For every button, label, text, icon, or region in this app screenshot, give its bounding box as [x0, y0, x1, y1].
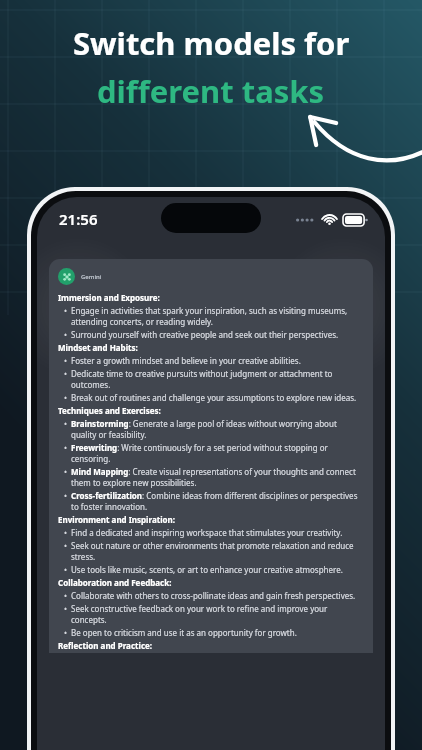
staticText: Cross-fertilization: Combine ideas from … [71, 490, 364, 512]
staticText: different tasks [97, 70, 325, 112]
staticText: Mind Mapping: Create visual representati… [71, 466, 364, 488]
staticText: • [64, 466, 68, 477]
staticText: Switch models for [73, 22, 350, 64]
staticText: • [64, 627, 68, 638]
staticText: • [64, 368, 68, 379]
staticText: Seek out nature or other environments th… [71, 540, 364, 562]
button[interactable]: Gemini [49, 259, 373, 653]
staticText: Dedicate time to creative pursuits witho… [71, 368, 364, 390]
staticText: • [64, 490, 68, 501]
staticText: Mindset and Habits: [58, 342, 138, 353]
staticText: Gemini [81, 273, 102, 281]
staticText: Techniques and Exercises: [58, 405, 161, 416]
staticText: Brainstorming: Generate a large pool of … [71, 418, 364, 440]
staticText: 21:56 [59, 209, 98, 229]
staticText: • [64, 603, 68, 614]
staticText: • [64, 329, 68, 340]
staticText: Surround yourself with creative people a… [71, 329, 339, 340]
staticText: • [64, 392, 68, 403]
staticText: • [64, 564, 68, 575]
staticText: Environment and Inspiration: [58, 514, 176, 525]
staticText: • [64, 540, 68, 551]
staticText: • [64, 355, 68, 366]
staticText: Collaborate with others to cross-pollina… [71, 590, 356, 601]
staticText: • [64, 305, 68, 316]
staticText: • [64, 442, 68, 453]
staticText: • [64, 418, 68, 429]
staticText: Collaboration and Feedback: [58, 577, 172, 588]
staticText: • [64, 590, 68, 601]
staticText: Use tools like music, scents, or art to … [71, 564, 343, 575]
staticText: Find a dedicated and inspiring workspace… [71, 527, 343, 538]
staticText: Freewriting: Write continuously for a se… [71, 442, 364, 464]
staticText: Be open to criticism and use it as an op… [71, 627, 297, 638]
staticText: Immersion and Exposure: [58, 292, 160, 303]
staticText: Break out of routines and challenge your… [71, 392, 357, 403]
staticText: • [64, 527, 68, 538]
staticText: Engage in activities that spark your ins… [71, 305, 364, 327]
staticText: Foster a growth mindset and believe in y… [71, 355, 301, 366]
staticText: Reflection and Practice: [58, 640, 153, 651]
staticText: Seek constructive feedback on your work … [71, 603, 364, 625]
